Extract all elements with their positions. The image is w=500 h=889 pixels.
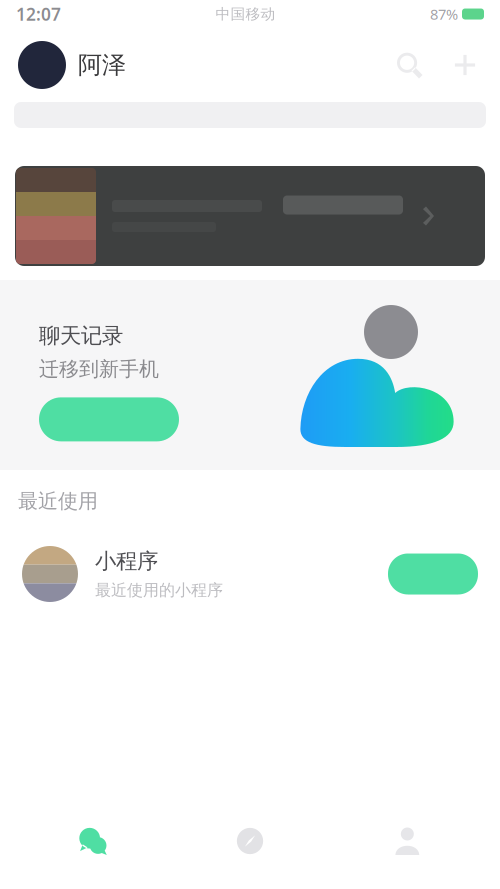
staticText: 最近使用的小程序 [95,580,223,600]
button[interactable]: Me [329,812,486,870]
button[interactable]: Profile [18,41,66,89]
staticText: 阿泽 [78,50,126,80]
staticText: 小程序 [95,548,158,574]
button[interactable]: Chats [14,812,171,870]
button[interactable]: 小程序 [0,532,500,616]
button[interactable]: Search [392,48,426,82]
button[interactable]: Add [448,48,482,82]
staticText: 12:07 [16,2,61,25]
button[interactable] [39,397,179,441]
staticText: 中国移动 [215,5,275,23]
button[interactable] [0,166,500,266]
staticText: 最近使用 [18,489,98,513]
staticText: 87% [430,4,458,24]
button[interactable]: Search [0,102,500,128]
staticText: 聊天记录 [39,323,123,349]
staticText: 迁移到新手机 [39,357,159,381]
button[interactable]: Discover [171,812,329,870]
